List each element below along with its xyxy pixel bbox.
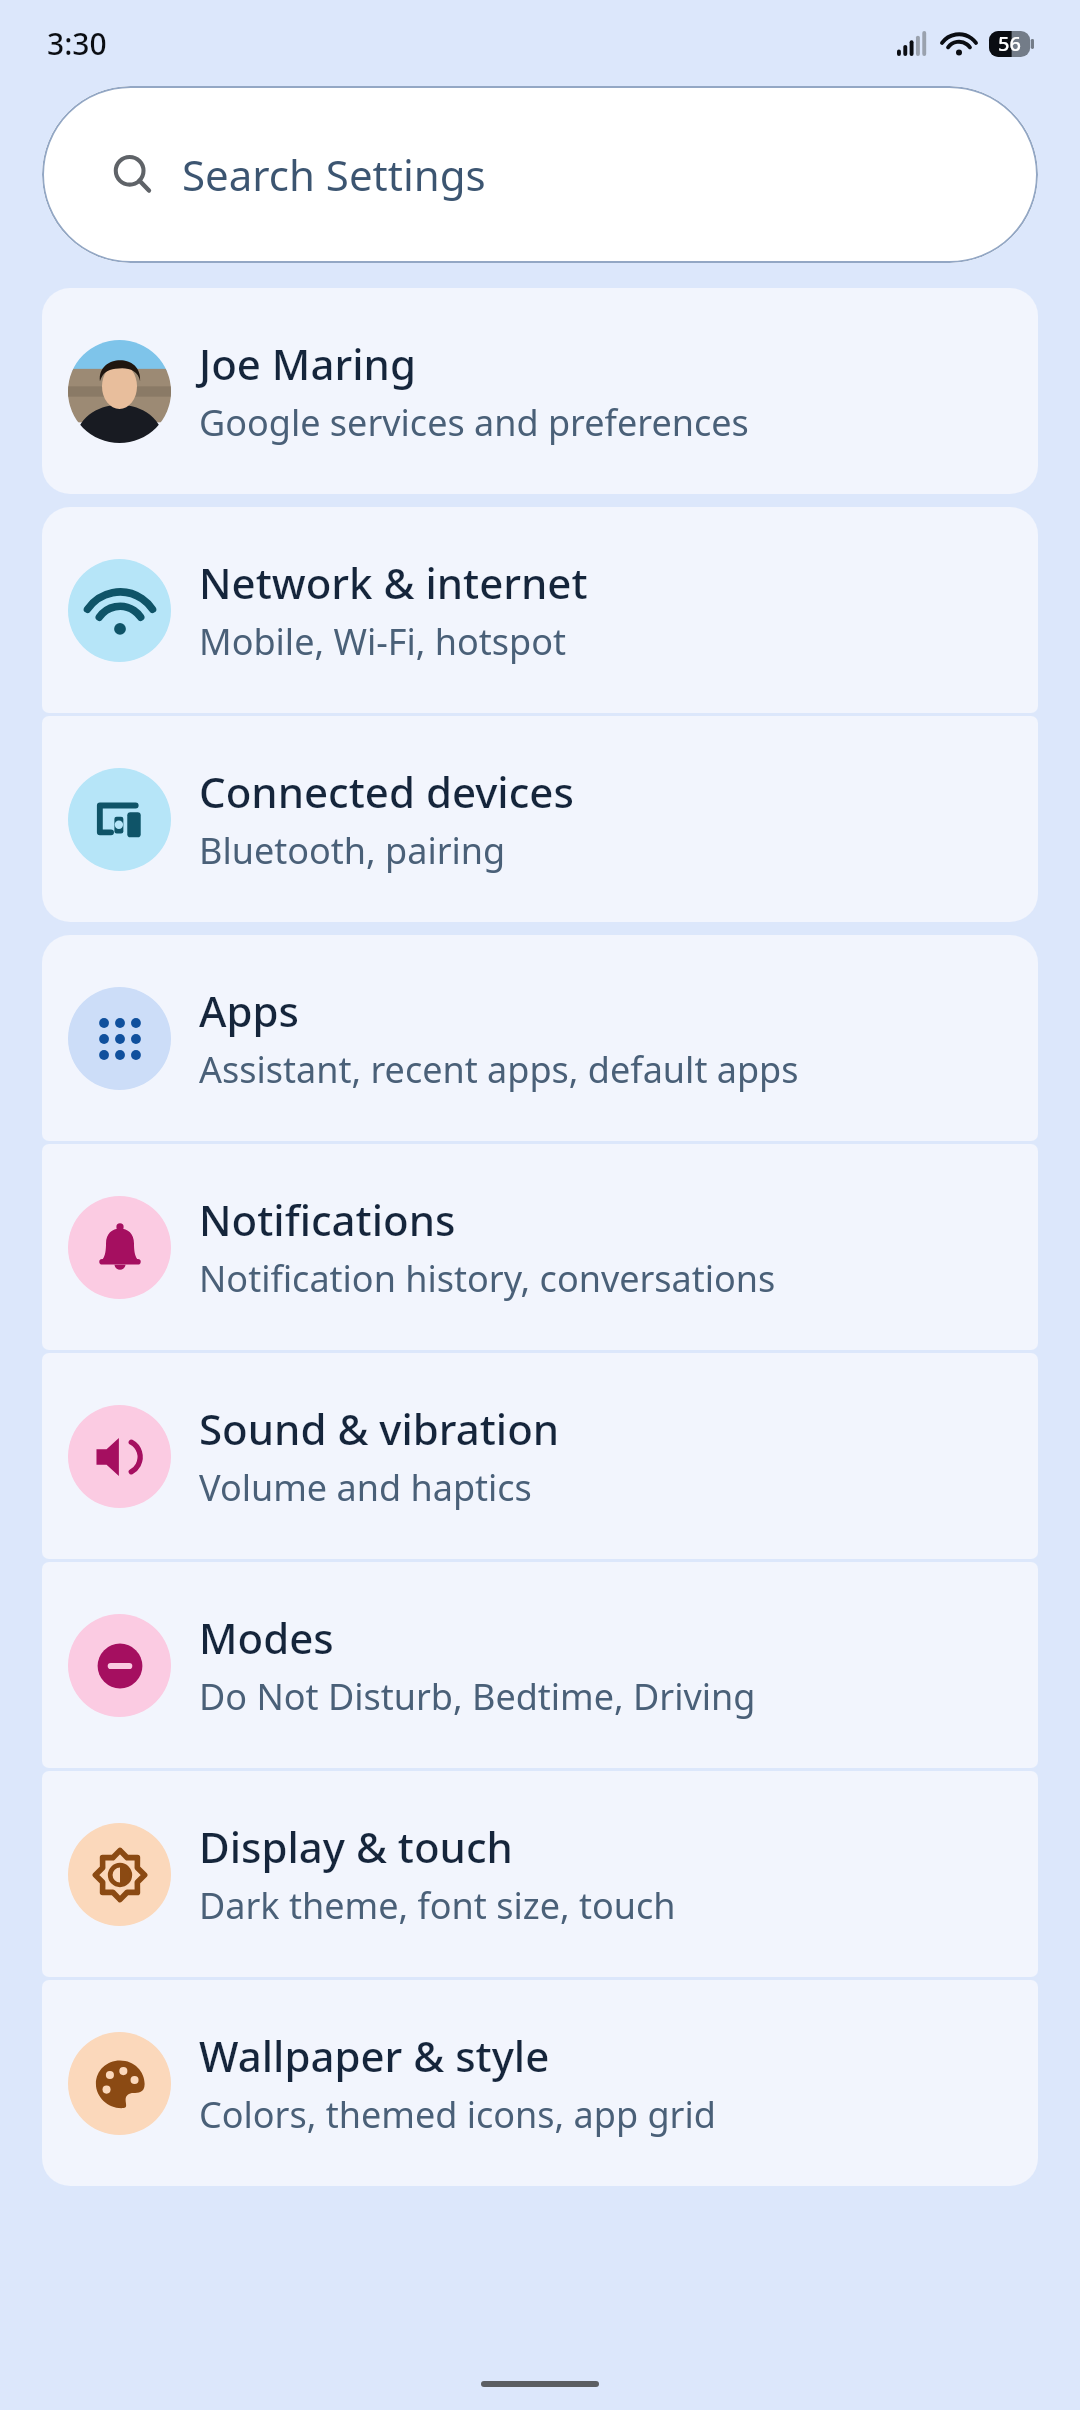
- other: Display and touch: [68, 1823, 171, 1926]
- other: Network and internet: [68, 559, 171, 662]
- other: Notifications: [68, 1196, 171, 1299]
- staticText: Modes: [199, 1609, 334, 1666]
- staticText: Bluetooth, pairing: [199, 826, 506, 875]
- other: Connected devices: [68, 768, 171, 871]
- button[interactable]: Account: [42, 288, 1038, 494]
- staticText: Search Settings: [182, 146, 486, 203]
- button[interactable]: Wallpaper and style: [42, 1980, 1038, 2186]
- button[interactable]: Search Settings: [42, 86, 1038, 263]
- other: Apps: [68, 987, 171, 1090]
- staticText: Assistant, recent apps, default apps: [199, 1045, 799, 1094]
- button[interactable]: Network and internet: [42, 507, 1038, 713]
- other: Sound and vibration: [68, 1405, 171, 1508]
- staticText: 3:30: [47, 23, 107, 64]
- button[interactable]: Sound and vibration: [42, 1353, 1038, 1559]
- button[interactable]: Apps: [42, 935, 1038, 1141]
- staticText: Network & internet: [199, 554, 588, 611]
- staticText: Apps: [199, 982, 300, 1039]
- staticText: Joe Maring: [199, 335, 416, 392]
- other: Account: [68, 340, 171, 443]
- staticText: Notifications: [199, 1191, 456, 1248]
- staticText: Colors, themed icons, app grid: [199, 2090, 716, 2139]
- staticText: Display & touch: [199, 1818, 513, 1875]
- staticText: Volume and haptics: [199, 1463, 532, 1512]
- staticText: Connected devices: [199, 763, 574, 820]
- button[interactable]: Connected devices: [42, 716, 1038, 922]
- staticText: Google services and preferences: [199, 398, 749, 447]
- button[interactable]: Notifications: [42, 1144, 1038, 1350]
- staticText: Dark theme, font size, touch: [199, 1881, 676, 1930]
- staticText: Wallpaper & style: [199, 2027, 550, 2084]
- staticText: Notification history, conversations: [199, 1254, 776, 1303]
- other: Modes: [68, 1614, 171, 1717]
- button[interactable]: Modes: [42, 1562, 1038, 1768]
- staticText: Sound & vibration: [199, 1400, 560, 1457]
- button[interactable]: Display and touch: [42, 1771, 1038, 1977]
- staticText: Do Not Disturb, Bedtime, Driving: [199, 1672, 756, 1721]
- other: Wallpaper and style: [68, 2032, 171, 2135]
- staticText: 56: [998, 30, 1021, 57]
- staticText: Mobile, Wi-Fi, hotspot: [199, 617, 566, 666]
